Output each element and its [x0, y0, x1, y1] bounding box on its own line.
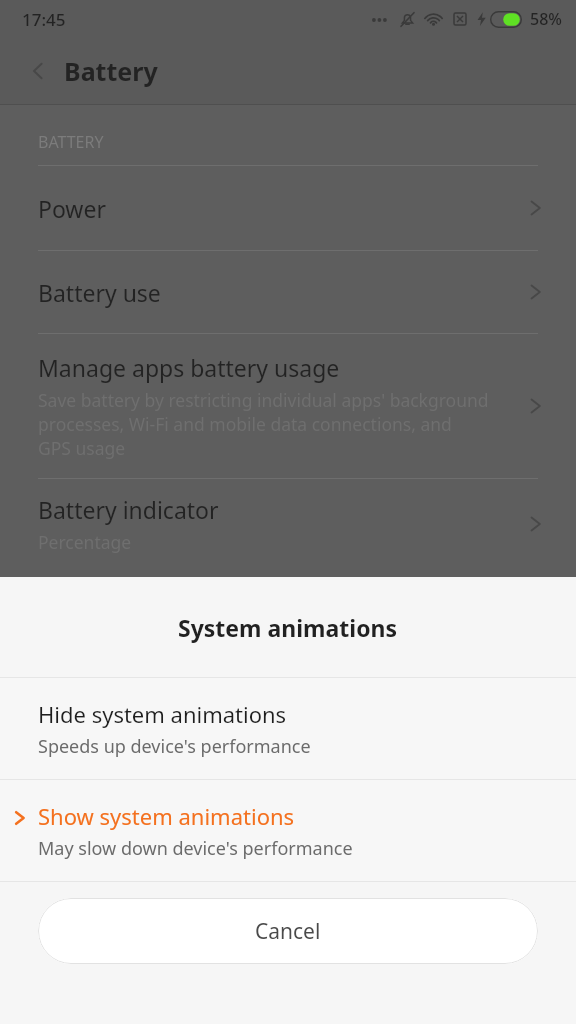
staticText: Manage apps battery usage: [38, 352, 340, 383]
staticText: Hide system animations: [38, 699, 287, 729]
staticText: May slow down device's performance: [38, 836, 353, 861]
staticText: Cancel: [255, 917, 321, 946]
button[interactable]: Manage apps battery usage: [0, 334, 576, 478]
staticText: Save battery by restricting individual a…: [38, 388, 489, 460]
button[interactable]: Hide system animations: [0, 678, 576, 779]
staticText: Speeds up device's performance: [38, 734, 311, 759]
staticText: 17:45: [22, 8, 66, 31]
staticText: BATTERY: [38, 131, 104, 153]
button[interactable]: Power: [0, 166, 576, 250]
staticText: Power: [38, 193, 106, 224]
staticText: Battery indicator: [38, 494, 219, 525]
staticText: Show system animations: [38, 801, 295, 831]
staticText: Percentage: [38, 530, 132, 554]
button[interactable]: Cancel: [38, 898, 538, 964]
button[interactable]: Battery indicator: [0, 479, 576, 569]
staticText: 58%: [530, 8, 562, 30]
button[interactable]: Show system animations: [0, 780, 576, 881]
staticText: Battery: [64, 54, 158, 88]
button[interactable]: Battery use: [0, 251, 576, 333]
staticText: System animations: [178, 612, 398, 643]
staticText: Battery use: [38, 277, 161, 308]
